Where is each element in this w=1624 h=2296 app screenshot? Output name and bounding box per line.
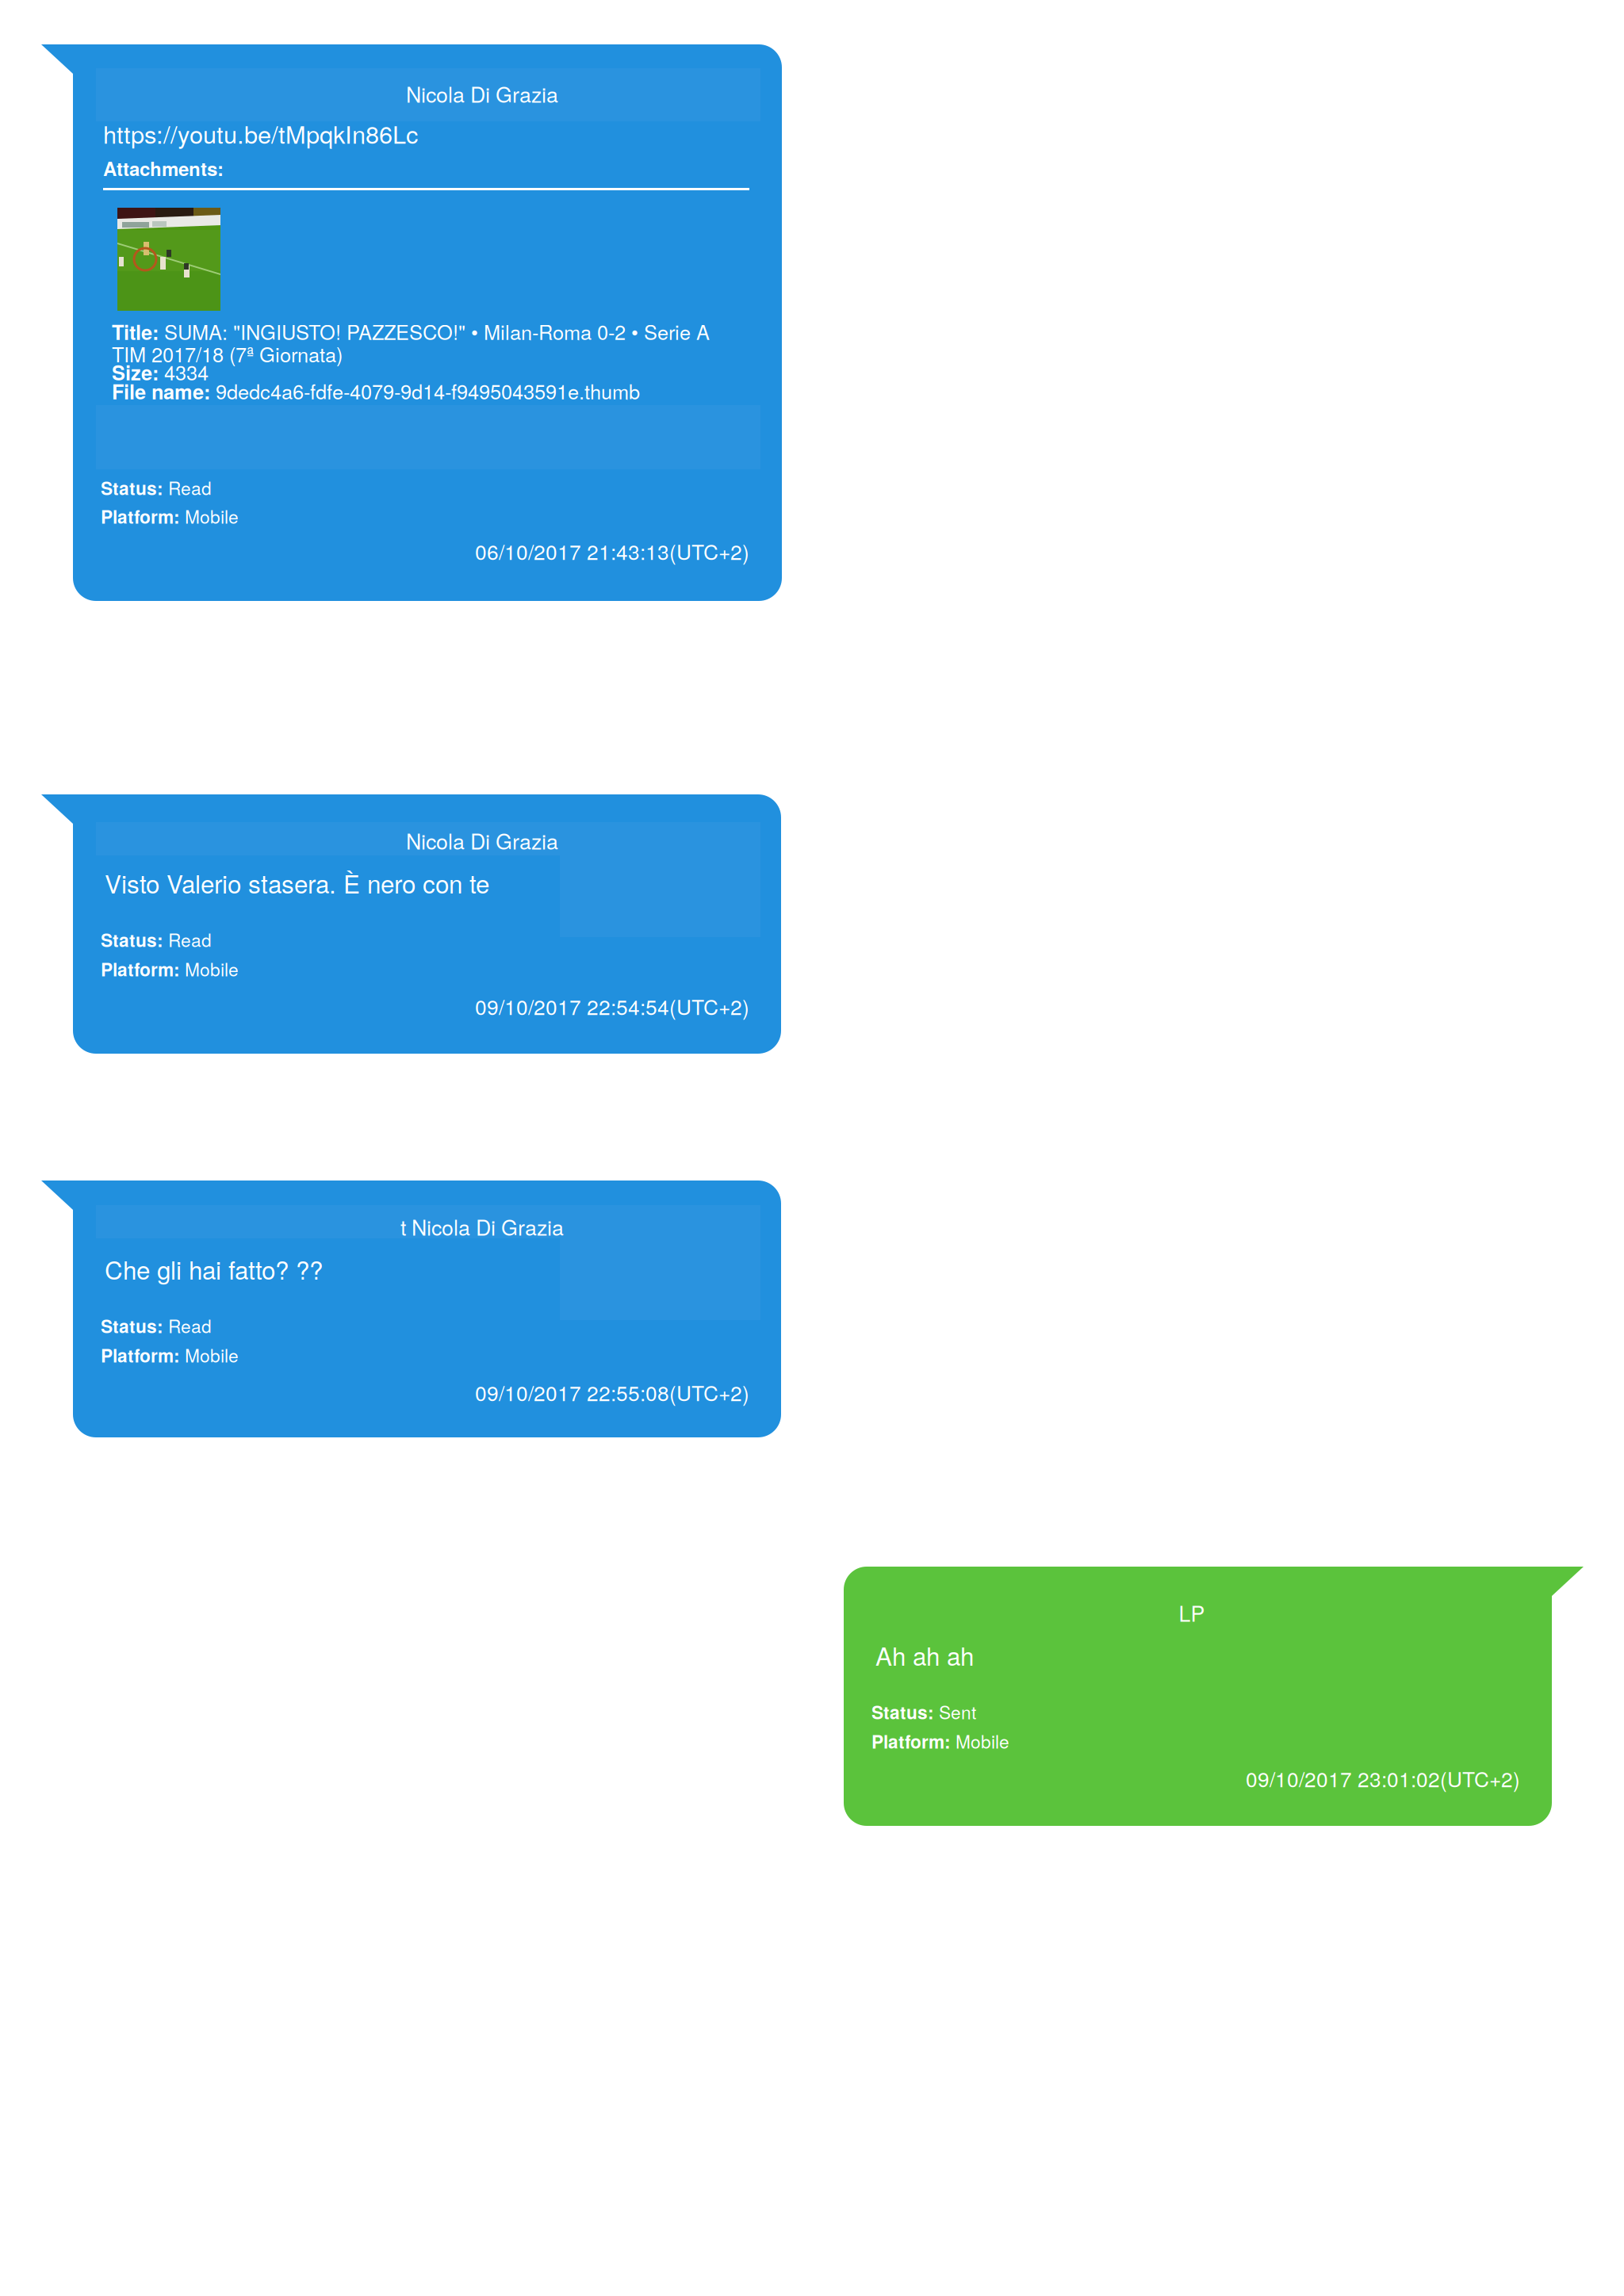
staticText: t Nicola Di Grazia bbox=[400, 1211, 564, 1242]
staticText: Nicola Di Grazia bbox=[406, 78, 558, 109]
staticText: Visto Valerio stasera. È nero con te bbox=[105, 865, 489, 901]
staticText: Platform: Mobile bbox=[871, 1728, 1009, 1754]
staticText: Size: 4334 bbox=[112, 358, 209, 386]
staticText: 09/10/2017 22:55:08(UTC+2) bbox=[475, 1377, 749, 1407]
staticText: Status: Sent bbox=[871, 1699, 976, 1725]
staticText: Attachments: bbox=[103, 155, 224, 182]
staticText: https://youtu.be/tMpqkIn86Lc bbox=[103, 116, 418, 151]
staticText: Platform: Mobile bbox=[101, 1342, 239, 1368]
staticText: Status: Read bbox=[101, 475, 212, 500]
button[interactable]: t Nicola Di Grazia bbox=[41, 1181, 781, 1437]
staticText: 09/10/2017 22:54:54(UTC+2) bbox=[475, 991, 749, 1021]
button[interactable]: LP bbox=[844, 1567, 1584, 1826]
staticText: 06/10/2017 21:43:13(UTC+2) bbox=[475, 536, 749, 566]
staticText: TIM 2017/18 (7ª Giornata) bbox=[112, 339, 343, 368]
staticText: LP bbox=[1179, 1598, 1205, 1628]
button[interactable]: Nicola Di Grazia bbox=[41, 44, 782, 601]
staticText: 09/10/2017 23:01:02(UTC+2) bbox=[1246, 1763, 1520, 1793]
staticText: Platform: Mobile bbox=[101, 503, 239, 529]
staticText: Platform: Mobile bbox=[101, 956, 239, 982]
staticText: Che gli hai fatto? ?? bbox=[105, 1251, 323, 1287]
staticText: Title: SUMA: "INGIUSTO! PAZZESCO!" • Mil… bbox=[112, 317, 710, 346]
staticText: Ah ah ah bbox=[875, 1637, 974, 1673]
button[interactable]: Nicola Di Grazia bbox=[41, 794, 781, 1054]
staticText: Status: Read bbox=[101, 1313, 212, 1338]
staticText: Nicola Di Grazia bbox=[406, 825, 558, 856]
staticText: File name: 9dedc4a6-fdfe-4079-9d14-f9495… bbox=[112, 377, 640, 405]
staticText: Status: Read bbox=[101, 927, 212, 952]
